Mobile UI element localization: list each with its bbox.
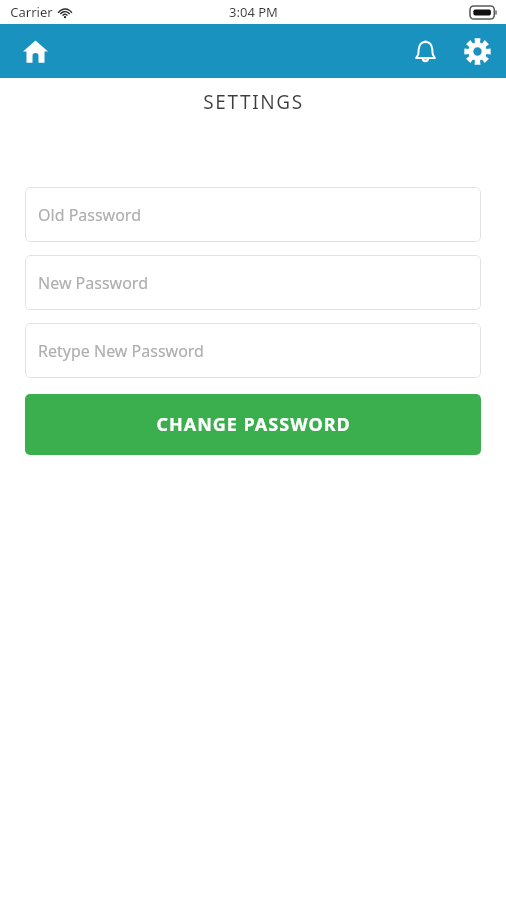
staticText: Retype New Password bbox=[38, 340, 204, 362]
staticText: 3:04 PM bbox=[229, 3, 278, 21]
button[interactable]: Retype New Password bbox=[25, 323, 481, 378]
button[interactable]: Old Password bbox=[25, 187, 481, 242]
staticText: SETTINGS bbox=[203, 89, 304, 115]
button[interactable]: New Password bbox=[25, 255, 481, 310]
button[interactable]: CHANGE PASSWORD bbox=[25, 394, 481, 455]
staticText: CHANGE PASSWORD bbox=[156, 412, 351, 437]
staticText: New Password bbox=[38, 272, 148, 294]
button[interactable]: Notifications bbox=[404, 30, 446, 72]
button[interactable]: Settings bbox=[456, 30, 498, 72]
staticText: Old Password bbox=[38, 204, 141, 226]
button[interactable]: Home bbox=[13, 29, 57, 73]
staticText: Carrier bbox=[10, 3, 53, 21]
